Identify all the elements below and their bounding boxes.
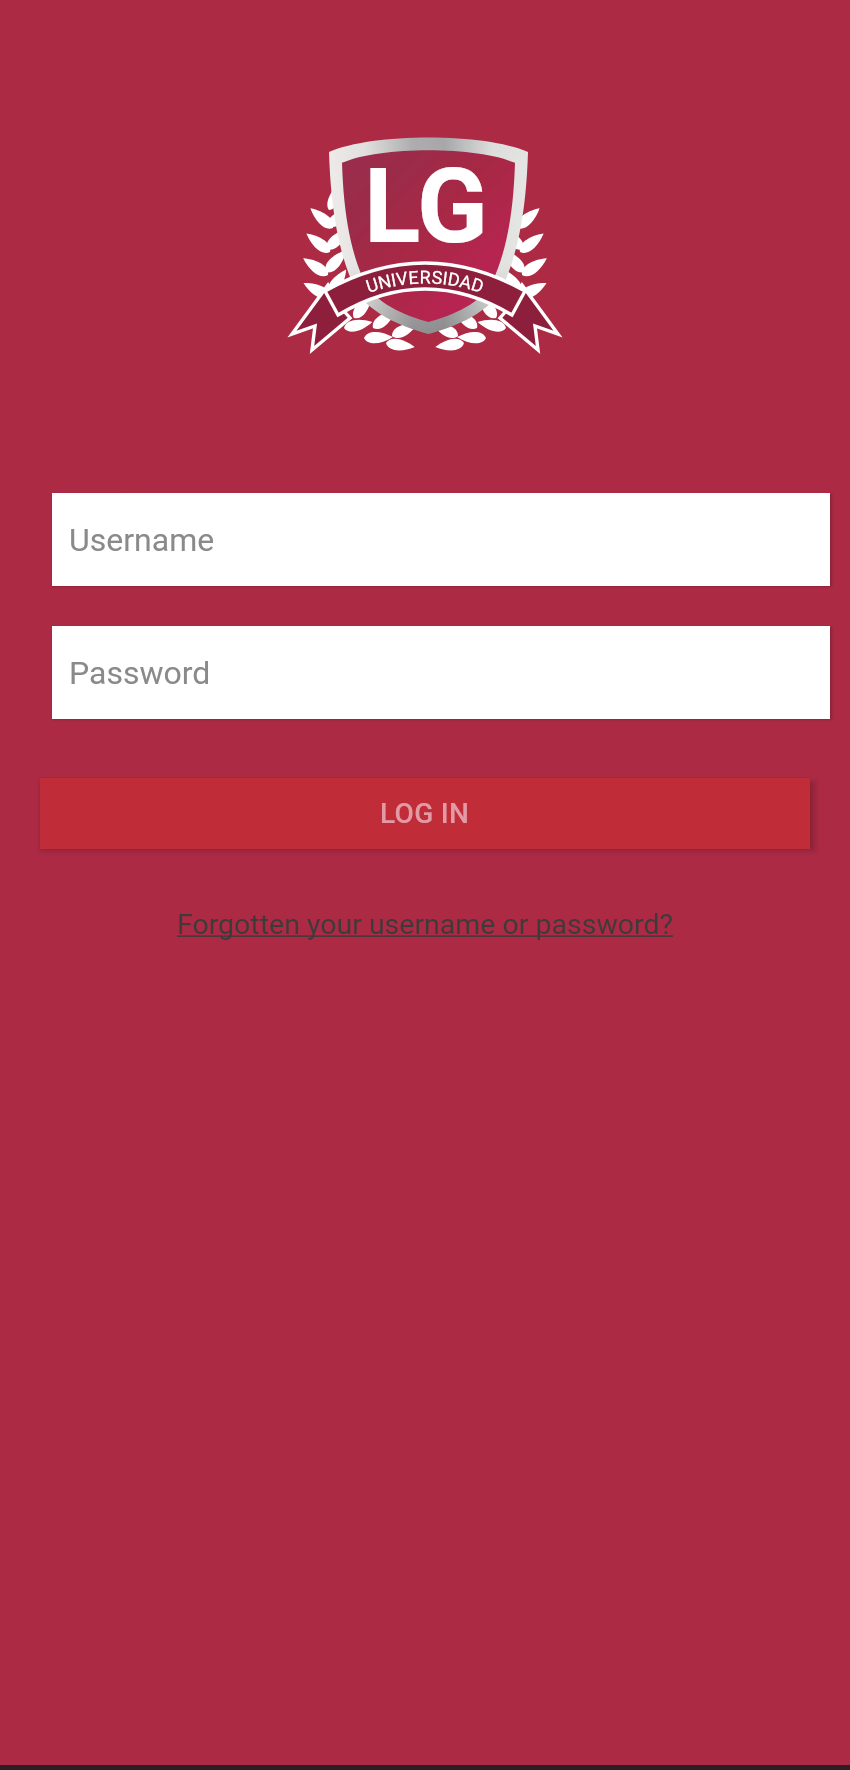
- button[interactable]: Forgotten your username or password?: [171, 904, 680, 945]
- staticText: LG: [364, 146, 488, 268]
- button[interactable]: Password: [52, 626, 830, 719]
- staticText: LOG IN: [380, 797, 470, 830]
- staticText: Password: [69, 654, 211, 692]
- staticText: Username: [69, 521, 215, 559]
- button[interactable]: LOG IN: [40, 778, 810, 849]
- button[interactable]: Username: [52, 493, 830, 586]
